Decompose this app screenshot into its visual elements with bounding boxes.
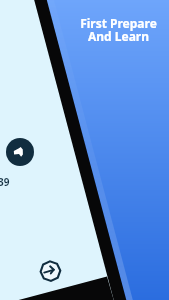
staticText: First Prepare And Learn	[68, 15, 169, 47]
button[interactable]: Next	[37, 258, 64, 285]
staticText: 39	[0, 175, 10, 189]
button[interactable]: Announcements	[6, 138, 34, 166]
